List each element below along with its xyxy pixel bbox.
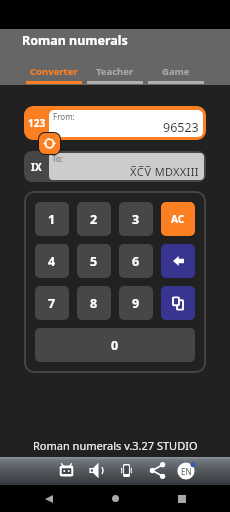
button[interactable]: 8 xyxy=(77,286,111,320)
staticText: To: xyxy=(52,153,63,164)
button[interactable]: 123 xyxy=(24,106,49,140)
staticText: Converter xyxy=(30,65,78,78)
button[interactable]: Share xyxy=(148,461,167,480)
button[interactable]: Backspace xyxy=(161,244,195,278)
button[interactable]: Swap input and output xyxy=(39,133,60,154)
button[interactable]: 6 xyxy=(119,244,153,278)
button[interactable]: Teacher xyxy=(84,62,145,85)
staticText: 1 xyxy=(48,211,56,228)
staticText: 8 xyxy=(90,295,98,312)
staticText: 3 xyxy=(132,211,140,228)
staticText: 0 xyxy=(111,337,119,354)
staticText: EN xyxy=(181,466,192,477)
staticText: Teacher xyxy=(96,65,134,78)
staticText: 96523 xyxy=(163,119,199,136)
button[interactable]: 9 xyxy=(119,286,153,320)
staticText: 5 xyxy=(90,253,98,270)
staticText: Roman numerals xyxy=(22,32,128,49)
staticText: 4 xyxy=(48,253,56,270)
staticText: 9 xyxy=(132,295,140,312)
staticText: 7 xyxy=(48,295,56,312)
button[interactable]: 2 xyxy=(77,202,111,236)
staticText: Game xyxy=(162,65,190,78)
button[interactable]: 7 xyxy=(35,286,69,320)
button[interactable]: To: xyxy=(49,153,204,180)
button[interactable]: 0 xyxy=(35,328,195,362)
staticText: 6 xyxy=(132,253,140,270)
button[interactable]: Recent apps xyxy=(169,486,194,511)
staticText: IX xyxy=(31,160,42,174)
staticText: 123 xyxy=(28,116,46,130)
button[interactable]: Language EN xyxy=(176,461,196,481)
button[interactable]: Back xyxy=(36,486,61,511)
button[interactable]: Android robot xyxy=(57,461,76,480)
button[interactable]: Sound xyxy=(87,461,106,480)
button[interactable]: Game xyxy=(145,62,206,85)
button[interactable]: From: xyxy=(49,110,203,137)
staticText: From: xyxy=(53,111,75,122)
button[interactable]: AC xyxy=(161,202,195,236)
button[interactable]: 1 xyxy=(35,202,69,236)
button[interactable]: IX xyxy=(24,151,49,182)
button[interactable]: Home xyxy=(103,486,128,511)
staticText: X̅C̅V̅ MDXXIII xyxy=(130,164,199,179)
button[interactable]: 5 xyxy=(77,244,111,278)
button[interactable]: 3 xyxy=(119,202,153,236)
button[interactable]: Copy result xyxy=(161,286,195,320)
staticText: 2 xyxy=(90,211,98,228)
button[interactable]: Converter xyxy=(24,62,84,85)
staticText: Roman numerals v.3.27 STUDIO xyxy=(33,438,198,453)
button[interactable]: 4 xyxy=(35,244,69,278)
staticText: AC xyxy=(171,212,185,226)
button[interactable]: Vibration xyxy=(117,461,136,480)
